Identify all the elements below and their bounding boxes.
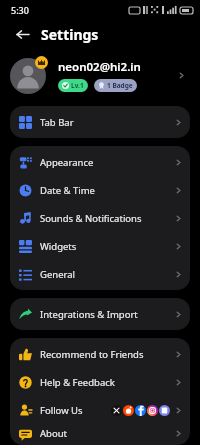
button[interactable]: Help & Feedback xyxy=(10,368,190,396)
button[interactable]: Widgets xyxy=(10,232,190,260)
staticText: General xyxy=(40,268,76,281)
staticText: Date & Time xyxy=(40,184,95,197)
button[interactable]: Tab Bar xyxy=(10,108,190,136)
button[interactable]: Appearance xyxy=(10,148,190,176)
button[interactable]: Recommend to Friends xyxy=(10,340,190,368)
staticText: 1 Badge xyxy=(107,81,133,90)
staticText: Recommend to Friends xyxy=(40,348,144,361)
staticText: Follow Us xyxy=(40,404,83,417)
button[interactable]: Sounds & Notifications xyxy=(10,204,190,232)
staticText: Integrations & Import xyxy=(40,308,138,321)
staticText: 5:30 xyxy=(11,4,29,16)
staticText: Lv.1 xyxy=(71,81,84,90)
staticText: About xyxy=(40,427,67,440)
button[interactable]: About xyxy=(10,424,190,443)
staticText: Appearance xyxy=(40,156,94,169)
staticText: Sounds & Notifications xyxy=(40,212,142,225)
staticText: Widgets xyxy=(40,240,77,253)
button[interactable]: Back xyxy=(11,23,33,45)
button[interactable]: General xyxy=(10,260,190,288)
staticText: Tab Bar xyxy=(40,116,74,129)
button[interactable]: neon02@hi2.in xyxy=(0,51,200,99)
button[interactable]: Integrations & Import xyxy=(10,300,190,328)
staticText: Help & Feedback xyxy=(40,376,115,389)
staticText: Settings xyxy=(41,25,99,44)
staticText: neon02@hi2.in xyxy=(58,59,141,75)
button[interactable]: Follow Us xyxy=(10,396,190,424)
button[interactable]: Date & Time xyxy=(10,176,190,204)
